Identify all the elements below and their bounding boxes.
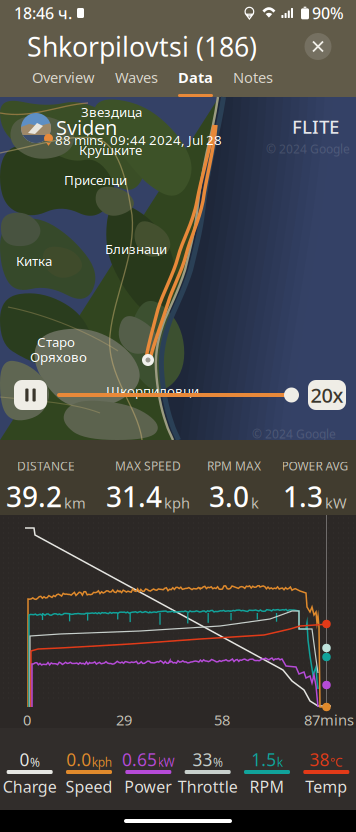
button[interactable]: 20x [308, 380, 346, 410]
staticText: © 2024 Google [252, 426, 336, 442]
staticText: kW [325, 493, 347, 513]
staticText: Charge [3, 776, 57, 797]
button[interactable]: Pause [14, 380, 47, 410]
staticText: 0.0 [66, 748, 91, 771]
staticText: RPM MAX [207, 458, 261, 474]
staticText: Throttle [178, 776, 238, 797]
staticText: % [213, 754, 223, 770]
staticText: 18:46 ч. [14, 2, 72, 24]
button[interactable]: Overview [32, 67, 95, 97]
staticText: 0 [19, 748, 29, 771]
staticText: Китка [16, 252, 52, 270]
staticText: 0.65 [122, 748, 157, 771]
staticText: kph [92, 754, 112, 770]
button[interactable]: Data [178, 67, 213, 97]
staticText: 29 [116, 710, 132, 729]
button[interactable]: 38 [297, 752, 356, 794]
button[interactable]: 0.0 [59, 752, 119, 794]
staticText: Звездица [81, 103, 142, 121]
staticText: 0 [23, 710, 31, 729]
staticText: Sviden [56, 114, 117, 141]
staticText: 58 [214, 710, 230, 729]
staticText: kW [158, 754, 175, 770]
staticText: 33 [192, 748, 212, 771]
staticText: 1.5 [251, 748, 276, 771]
staticText: °C [330, 754, 343, 770]
button[interactable]: Close [300, 28, 336, 64]
staticText: 3.0 [209, 478, 249, 515]
staticText: Power [124, 776, 172, 797]
staticText: km [64, 493, 86, 513]
staticText: 1.3 [283, 478, 323, 515]
staticText: Старо [37, 333, 75, 351]
staticText: DISTANCE [17, 458, 75, 474]
staticText: FLITE [292, 114, 339, 139]
staticText: RPM [249, 776, 284, 797]
staticText: Notes [233, 67, 273, 87]
staticText: Overview [32, 67, 95, 87]
staticText: Оряхово [30, 348, 87, 366]
staticText: Близнаци [105, 240, 167, 258]
staticText: Приселци [64, 171, 127, 189]
staticText: 20x [310, 382, 343, 408]
staticText: Waves [115, 67, 158, 87]
staticText: 31.4 [106, 478, 162, 515]
staticText: Шкорпиловци [106, 382, 199, 400]
staticText: kph [164, 493, 190, 513]
staticText: k [251, 493, 259, 513]
button[interactable]: 0 [0, 752, 59, 794]
staticText: 87mins [304, 710, 354, 729]
staticText: Shkorpilovtsi (186) [27, 29, 257, 64]
button[interactable]: Notes [233, 67, 273, 97]
staticText: Speed [65, 776, 112, 797]
staticText: 90% [312, 2, 344, 24]
staticText: % [30, 754, 40, 770]
staticText: © 2024 Google [266, 141, 350, 157]
staticText: Temp [305, 776, 347, 797]
staticText: MAX SPEED [115, 458, 181, 474]
staticText: Крушките [79, 141, 142, 159]
staticText: 88 mins, 09:44 2024, Jul 28 [55, 131, 222, 149]
button[interactable]: Waves [115, 67, 158, 97]
button[interactable]: 33 [178, 752, 237, 794]
staticText: 39.2 [6, 478, 62, 515]
staticText: Data [178, 67, 213, 87]
button[interactable]: 1.5 [237, 752, 297, 794]
staticText: POWER AVG [281, 458, 348, 474]
staticText: k [277, 754, 283, 770]
staticText: 38 [310, 748, 330, 771]
button[interactable]: 0.65 [119, 752, 178, 794]
